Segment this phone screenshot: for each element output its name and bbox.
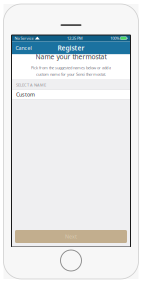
staticText: custom name for your Sensi thermostat. (36, 71, 106, 77)
button[interactable]: Custom (11, 89, 130, 100)
staticText: No Service (14, 36, 33, 41)
staticText: Pick from the suggested names below or a… (31, 65, 111, 70)
staticText: Custom (16, 91, 35, 98)
button[interactable]: Next (15, 230, 127, 243)
button[interactable]: Cancel (11, 41, 35, 54)
staticText: Next (65, 233, 77, 240)
staticText: 12:25 PM (67, 36, 83, 41)
staticText: Name your thermostat (35, 52, 106, 61)
staticText: SELECT A NAME (16, 82, 46, 87)
staticText: Cancel (15, 44, 31, 52)
staticText: 100% (110, 36, 119, 41)
staticText: Register (57, 44, 84, 52)
